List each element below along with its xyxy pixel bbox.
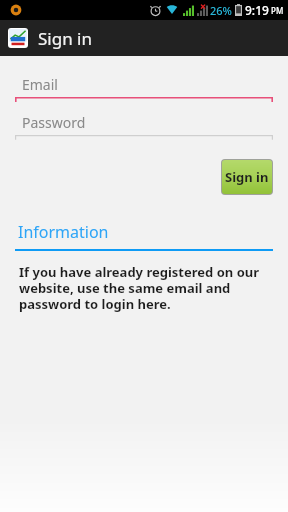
staticText: Email bbox=[22, 75, 58, 94]
staticText: Sign in bbox=[225, 168, 269, 186]
staticText: Password bbox=[22, 113, 86, 132]
button[interactable]: Email bbox=[15, 71, 273, 102]
staticText: If you have already registered on our we… bbox=[19, 263, 260, 312]
staticText: PM bbox=[271, 5, 284, 16]
button[interactable]: Sign in bbox=[222, 160, 272, 194]
staticText: Information bbox=[18, 221, 109, 243]
staticText: Sign in bbox=[38, 27, 92, 50]
staticText: 9:19 bbox=[245, 2, 269, 18]
staticText: 26% bbox=[210, 3, 232, 18]
button[interactable]: Password bbox=[15, 109, 273, 140]
